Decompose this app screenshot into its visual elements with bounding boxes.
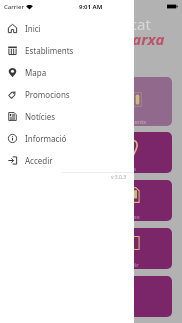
staticText: compracat xyxy=(76,14,151,34)
button[interactable]: Promocions xyxy=(0,83,134,105)
staticText: Inici xyxy=(25,23,41,34)
staticText: compracat xyxy=(76,14,151,34)
staticText: Notícies xyxy=(117,213,140,221)
button[interactable]: Mapa xyxy=(0,61,134,83)
staticText: Notícies xyxy=(25,111,56,122)
button[interactable]: Notícies xyxy=(10,180,172,221)
staticText: Promocions xyxy=(25,89,70,100)
other: Battery xyxy=(167,4,178,9)
button[interactable]: Informació xyxy=(0,127,134,149)
staticText: Mapa xyxy=(25,67,47,78)
button[interactable]: Establiments xyxy=(0,39,134,61)
staticText: Mapa xyxy=(120,165,136,173)
button[interactable]: Inici xyxy=(0,17,134,39)
staticText: v 3.0.3 xyxy=(111,174,127,181)
button[interactable]: Mapa xyxy=(10,132,172,173)
staticText: Establiments xyxy=(110,118,147,126)
staticText: la xarxa xyxy=(107,29,165,49)
button[interactable]: Notícies xyxy=(0,105,134,127)
button[interactable]: Establiments xyxy=(10,77,172,126)
button[interactable]: Accedir xyxy=(10,228,172,269)
button[interactable] xyxy=(10,276,172,317)
staticText: 9:01 AM xyxy=(79,3,103,11)
staticText: Accedir xyxy=(118,261,139,269)
staticText: Informació xyxy=(25,133,67,144)
staticText: Accedir xyxy=(25,155,53,166)
staticText: Establiments xyxy=(25,45,74,56)
staticText: Carrier xyxy=(4,3,24,11)
button[interactable]: Accedir xyxy=(0,149,134,171)
